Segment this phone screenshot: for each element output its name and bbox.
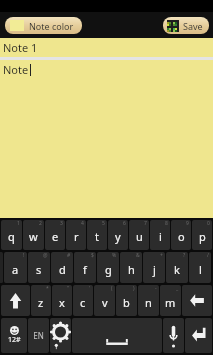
- staticText: p: [199, 229, 206, 244]
- staticText: ": [67, 285, 70, 292]
- staticText: +: [160, 252, 163, 259]
- staticText: Note 1: [3, 40, 38, 55]
- button[interactable]: 0: [192, 220, 212, 250]
- staticText: 7: [144, 220, 147, 227]
- staticText: h: [128, 262, 135, 277]
- staticText: 0: [207, 220, 210, 227]
- staticText: t: [95, 229, 99, 244]
- button[interactable]: 8: [150, 220, 170, 250]
- staticText: y: [115, 229, 121, 244]
- button[interactable]: &: [120, 252, 142, 283]
- button[interactable]: Space: [72, 318, 162, 353]
- button[interactable]: ": [52, 285, 72, 316]
- staticText: e: [52, 229, 59, 244]
- staticText: %: [112, 252, 117, 259]
- staticText: 9: [186, 220, 189, 227]
- staticText: r: [74, 229, 79, 244]
- staticText: -: [155, 285, 157, 292]
- staticText: k: [174, 262, 180, 277]
- staticText: 12#: [8, 335, 21, 345]
- button[interactable]: Settings: [50, 318, 71, 353]
- staticText: !: [23, 252, 25, 259]
- button[interactable]: 9: [171, 220, 191, 250]
- button[interactable]: Note color: [5, 17, 82, 34]
- staticText: (: [111, 285, 113, 292]
- button[interactable]: *: [31, 285, 51, 316]
- staticText: c: [80, 295, 86, 310]
- button[interactable]: _: [160, 285, 181, 316]
- staticText: n: [145, 295, 152, 310]
- staticText: l: [199, 262, 202, 277]
- staticText: 4: [81, 220, 84, 227]
- button[interactable]: !: [4, 252, 27, 283]
- button[interactable]: Backspace: [182, 285, 212, 316]
- button[interactable]: #: [51, 252, 73, 283]
- staticText: Save: [183, 20, 203, 32]
- staticText: /: [207, 252, 209, 259]
- staticText: Note: [3, 62, 29, 77]
- staticText: 1: [17, 220, 20, 227]
- staticText: v: [102, 295, 108, 310]
- staticText: EN: [33, 330, 44, 341]
- button[interactable]: Emoji and numbers: [1, 318, 27, 353]
- staticText: b: [123, 295, 130, 310]
- staticText: g: [105, 262, 112, 277]
- staticText: u: [136, 229, 143, 244]
- staticText: s: [36, 262, 42, 277]
- button[interactable]: 5: [87, 220, 107, 250]
- button[interactable]: Save: [163, 17, 209, 34]
- button[interactable]: ': [73, 285, 93, 316]
- staticText: ': [89, 285, 91, 292]
- staticText: 8: [165, 220, 168, 227]
- staticText: @: [43, 252, 48, 259]
- button[interactable]: /: [189, 252, 211, 283]
- staticText: m: [165, 295, 176, 310]
- button[interactable]: ?: [166, 252, 188, 283]
- staticText: 3: [60, 220, 63, 227]
- button[interactable]: (: [94, 285, 115, 316]
- staticText: $: [91, 252, 94, 259]
- staticText: a: [12, 262, 19, 277]
- staticText: o: [178, 229, 185, 244]
- button[interactable]: 3: [45, 220, 65, 250]
- staticText: _: [176, 285, 179, 292]
- button[interactable]: $: [74, 252, 96, 283]
- button[interactable]: Shift: [1, 285, 30, 316]
- staticText: ?: [183, 252, 186, 259]
- staticText: i: [159, 229, 162, 244]
- staticText: ): [133, 285, 135, 292]
- button[interactable]: ): [116, 285, 137, 316]
- button[interactable]: +: [143, 252, 165, 283]
- staticText: #: [67, 252, 71, 259]
- staticText: f: [83, 262, 87, 277]
- button[interactable]: 1: [1, 220, 22, 250]
- button[interactable]: EN: [28, 318, 49, 353]
- button[interactable]: %: [97, 252, 119, 283]
- button[interactable]: 6: [108, 220, 128, 250]
- button[interactable]: Enter: [185, 318, 212, 353]
- button[interactable]: 2: [23, 220, 44, 250]
- staticText: 5: [102, 220, 105, 227]
- staticText: j: [153, 262, 156, 277]
- staticText: *: [46, 285, 49, 292]
- staticText: d: [59, 262, 66, 277]
- button[interactable]: Voice input: [163, 318, 184, 353]
- staticText: Note color: [29, 20, 74, 32]
- staticText: 2: [39, 220, 42, 227]
- staticText: &: [136, 252, 140, 259]
- staticText: z: [38, 295, 44, 310]
- staticText: q: [8, 229, 15, 244]
- button[interactable]: -: [138, 285, 159, 316]
- button[interactable]: 7: [129, 220, 149, 250]
- staticText: w: [29, 229, 38, 244]
- button[interactable]: 4: [66, 220, 86, 250]
- button[interactable]: @: [28, 252, 50, 283]
- staticText: x: [59, 295, 65, 310]
- staticText: 6: [123, 220, 126, 227]
